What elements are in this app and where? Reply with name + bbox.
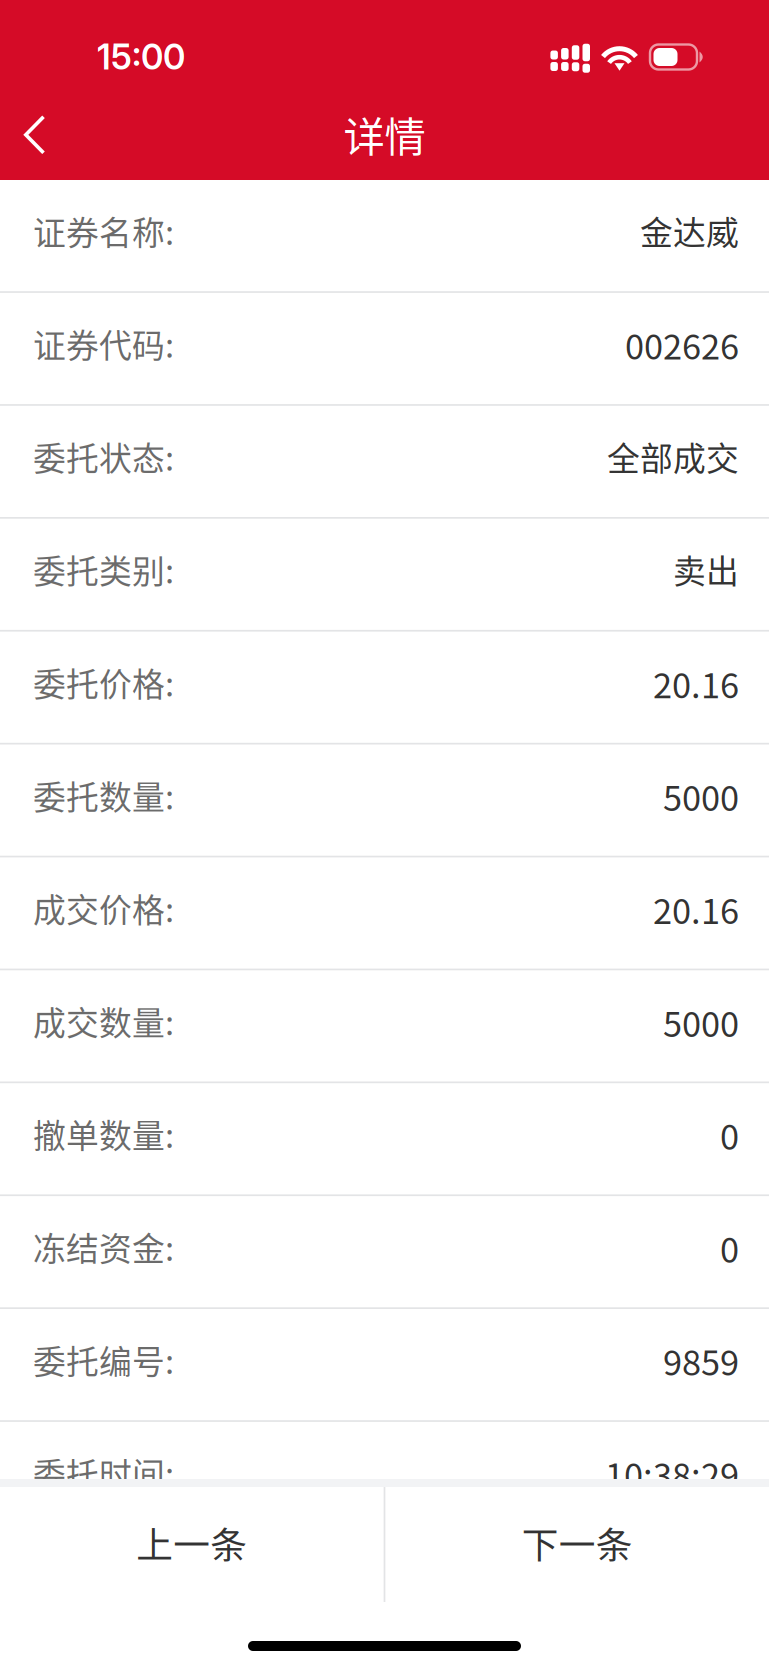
staticText: 金达威 — [640, 207, 739, 254]
staticText: 成交价格: — [33, 884, 174, 932]
staticText: 全部成交 — [607, 433, 739, 480]
staticText: 5000 — [663, 997, 739, 1047]
staticText: 20.16 — [653, 658, 739, 708]
staticText: 20.16 — [653, 884, 739, 934]
staticText: 上一条 — [136, 1516, 247, 1569]
staticText: 9859 — [663, 1336, 739, 1385]
staticText: 撤单数量: — [33, 1110, 174, 1158]
staticText: 10:38:29 — [605, 1449, 739, 1498]
staticText: 证券代码: — [33, 320, 174, 367]
button[interactable]: Back — [0, 96, 70, 180]
staticText: 成交数量: — [33, 997, 174, 1045]
staticText: 冻结资金: — [33, 1223, 174, 1270]
staticText: 002626 — [625, 320, 739, 369]
staticText: 卖出 — [673, 546, 739, 593]
staticText: 委托状态: — [33, 433, 174, 480]
staticText: 委托编号: — [33, 1336, 174, 1383]
staticText: 0 — [720, 1223, 739, 1273]
button[interactable]: 上一条 — [0, 1487, 384, 1602]
staticText: 委托价格: — [33, 658, 174, 706]
staticText: 委托数量: — [33, 771, 174, 819]
staticText: 15:00 — [97, 36, 185, 78]
staticText: 0 — [720, 1110, 739, 1160]
staticText: 下一条 — [522, 1516, 633, 1569]
staticText: 5000 — [663, 771, 739, 821]
staticText: 详情 — [343, 104, 425, 164]
staticText: 证券名称: — [33, 207, 174, 254]
staticText: 委托类别: — [33, 546, 174, 593]
staticText: 委托时间: — [33, 1449, 174, 1496]
button[interactable]: 下一条 — [385, 1487, 769, 1602]
